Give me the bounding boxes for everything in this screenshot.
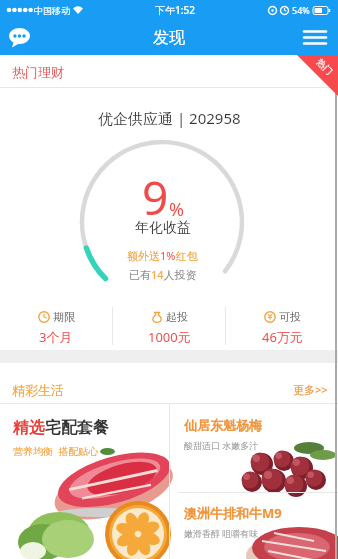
button[interactable]: 可投 [226,302,338,350]
staticText: 酸甜适口 水嫩多汁 [184,439,259,451]
button[interactable]: 优企供应通 | 202958 [0,88,338,350]
staticText: 热门 [315,56,335,77]
staticText: 发现 [153,28,185,48]
button[interactable] [8,26,32,50]
staticText: 中国移动 [34,5,70,16]
button[interactable]: 澳洲牛排和牛M9 [170,493,338,559]
staticText: 起投 [166,310,188,324]
staticText: 澳洲牛排和牛M9 [184,504,282,522]
staticText: 嫩滑香醇 咀嚼有味 [184,527,259,539]
staticText: 54% [292,4,310,16]
button[interactable]: 精选 [0,404,169,559]
button[interactable] [302,25,328,51]
staticText: 仙居东魁杨梅 [184,417,262,433]
button[interactable]: 期限 [0,302,112,350]
staticText: 可投 [279,310,301,324]
staticText: 额外送1%红包 [127,248,198,263]
staticText: 9 [142,166,169,229]
staticText: 宅配套餐 [45,418,109,438]
staticText: 年化收益 [135,219,191,237]
staticText: 期限 [53,310,75,324]
staticText: 精选 [13,418,45,438]
staticText: 热门理财 [12,64,64,80]
staticText: 优企供应通 | 202958 [98,108,241,128]
staticText: 46万元 [262,328,303,346]
button[interactable]: 仙居东魁杨梅 [170,404,338,492]
button[interactable]: 起投 [113,302,225,350]
staticText: 3个月 [39,328,73,346]
button[interactable]: 更多>> [293,382,328,397]
staticText: 下午1:52 [155,3,195,17]
staticText: % [169,197,184,222]
staticText: 1000元 [148,328,191,346]
staticText: 精彩生活 [12,382,64,398]
button[interactable]: 热门理财 [0,55,338,88]
staticText: 已有14人投资 [129,267,197,282]
staticText: 营养均衡 搭配贴心 [13,444,99,458]
